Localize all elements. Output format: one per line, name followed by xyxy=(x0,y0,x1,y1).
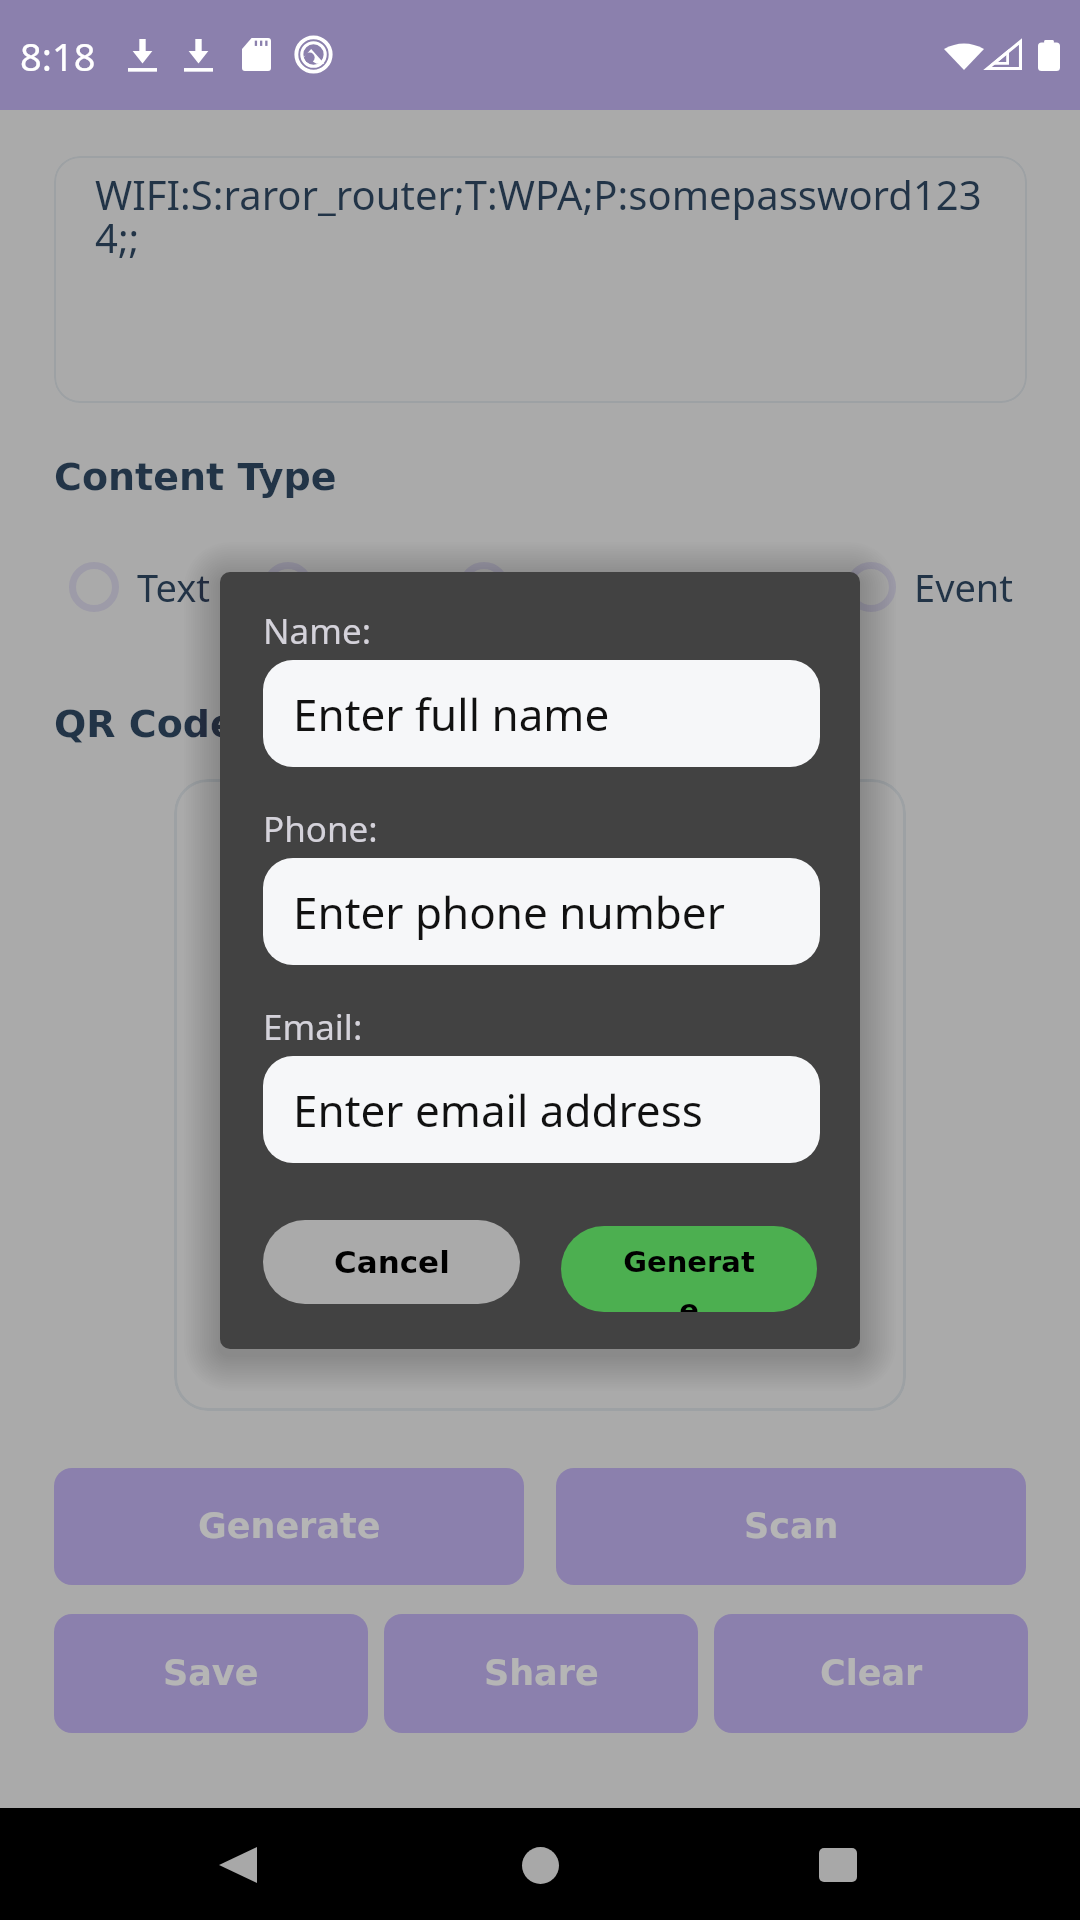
staticText: Cancel xyxy=(334,1244,450,1280)
button[interactable]: Text xyxy=(69,560,210,614)
staticText: WIFI:S:raror_router;T:WPA;P:somepassword… xyxy=(95,167,990,264)
button[interactable]: URL xyxy=(263,560,403,614)
staticText: Enter full name xyxy=(293,684,610,744)
button[interactable]: Generate xyxy=(561,1226,817,1312)
button[interactable]: WiFi xyxy=(459,560,602,614)
button[interactable]: Event xyxy=(846,560,1014,614)
staticText: Enter phone number xyxy=(293,882,725,942)
button[interactable]: Enter full name xyxy=(263,660,820,767)
staticText: Text xyxy=(137,561,210,613)
staticText: Enter email address xyxy=(293,1080,703,1140)
staticText: Email: xyxy=(263,1003,363,1051)
button[interactable]: Back xyxy=(190,1817,286,1913)
button[interactable]: Cancel xyxy=(263,1220,520,1304)
staticText: Scan xyxy=(744,1506,839,1547)
staticText: Share xyxy=(484,1653,599,1694)
button[interactable]: Enter email address xyxy=(263,1056,820,1163)
staticText: QR Code xyxy=(54,702,236,746)
button[interactable]: Scan xyxy=(556,1468,1026,1585)
staticText: Clear xyxy=(820,1653,923,1694)
button[interactable]: Generate xyxy=(54,1468,524,1585)
staticText: WiFi xyxy=(527,561,602,613)
staticText: Content Type xyxy=(54,455,337,499)
button[interactable]: Enter phone number xyxy=(263,858,820,965)
staticText: URL xyxy=(331,561,403,613)
button[interactable]: Share xyxy=(384,1614,698,1733)
button[interactable]: WIFI:S:raror_router;T:WPA;P:somepassword… xyxy=(54,156,1027,403)
staticText: Generate xyxy=(198,1506,381,1547)
button[interactable]: Recent apps xyxy=(790,1817,886,1913)
staticText: Save xyxy=(163,1653,259,1694)
staticText: Phone: xyxy=(263,805,378,853)
staticText: Event xyxy=(914,561,1014,613)
button[interactable]: Save xyxy=(54,1614,368,1733)
staticText: Name: xyxy=(263,607,372,655)
button[interactable]: Home xyxy=(492,1817,588,1913)
staticText: 8:18 xyxy=(20,30,96,82)
staticText: Generate xyxy=(619,1245,759,1312)
button[interactable]: Clear xyxy=(714,1614,1028,1733)
